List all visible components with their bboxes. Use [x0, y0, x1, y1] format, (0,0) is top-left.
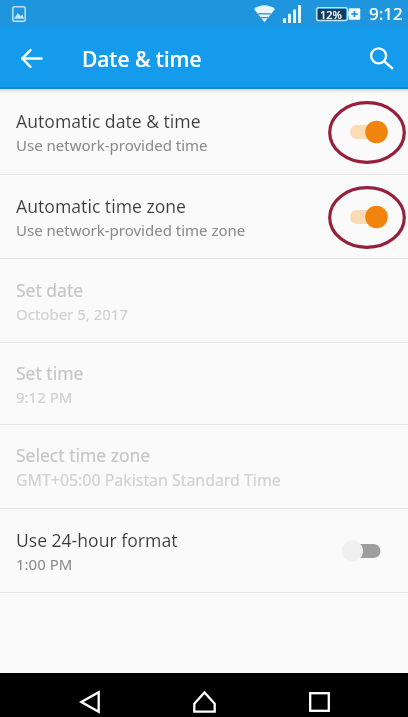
staticText: Set time: [16, 361, 84, 385]
button[interactable]: Set date: [0, 259, 408, 342]
staticText: Use network-provided time: [16, 135, 208, 155]
button[interactable]: Set time: [0, 343, 408, 424]
staticText: Automatic time zone: [16, 194, 186, 218]
button[interactable]: Home: [172, 680, 236, 717]
button[interactable]: Back: [58, 680, 122, 717]
staticText: GMT+05:00 Pakistan Standard Time: [16, 469, 281, 491]
staticText: October 5, 2017: [16, 304, 129, 324]
staticText: Set date: [16, 278, 84, 302]
staticText: 9:12 PM: [16, 387, 73, 407]
staticText: Select time zone: [16, 443, 151, 467]
button[interactable]: Search: [357, 34, 405, 82]
staticText: 1:00 PM: [16, 554, 73, 574]
button[interactable]: Automatic time zone: [0, 175, 408, 258]
button[interactable]: Select time zone: [0, 425, 408, 508]
staticText: Automatic date & time: [16, 109, 201, 133]
button[interactable]: Automatic date & time: [0, 89, 408, 174]
staticText: Use 24-hour format: [16, 528, 178, 552]
staticText: Use network-provided time zone: [16, 220, 246, 240]
staticText: 9:12: [369, 2, 403, 25]
button[interactable]: Use 24-hour format: [0, 509, 408, 592]
staticText: 12%: [320, 7, 342, 22]
button[interactable]: Navigate up: [7, 34, 55, 82]
staticText: Date & time: [82, 45, 202, 74]
button[interactable]: Recent apps: [287, 680, 351, 717]
